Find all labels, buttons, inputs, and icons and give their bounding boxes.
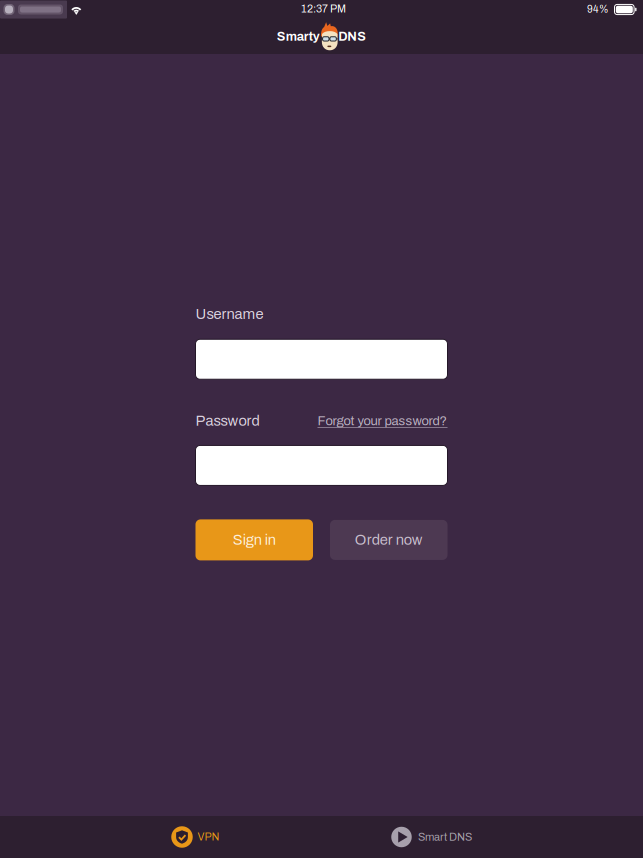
button[interactable]: Sign in bbox=[195, 519, 313, 560]
button[interactable]: Smart DNS bbox=[390, 816, 472, 858]
staticText: 94% bbox=[587, 4, 609, 15]
staticText: 12:37 PM bbox=[301, 3, 346, 15]
staticText: VPN bbox=[197, 831, 219, 843]
staticText: Username bbox=[195, 306, 263, 322]
button[interactable]: VPN bbox=[171, 816, 219, 858]
staticText: Order now bbox=[355, 532, 423, 548]
staticText: DNS bbox=[338, 30, 366, 43]
staticText: Smarty bbox=[277, 30, 320, 43]
staticText: Password bbox=[195, 413, 259, 429]
staticText: Forgot your password? bbox=[317, 414, 447, 428]
staticText: Smart DNS bbox=[418, 831, 472, 843]
staticText: Sign in bbox=[233, 532, 276, 548]
button[interactable]: Forgot your password? bbox=[317, 414, 447, 428]
button[interactable]: Order now bbox=[330, 520, 447, 560]
